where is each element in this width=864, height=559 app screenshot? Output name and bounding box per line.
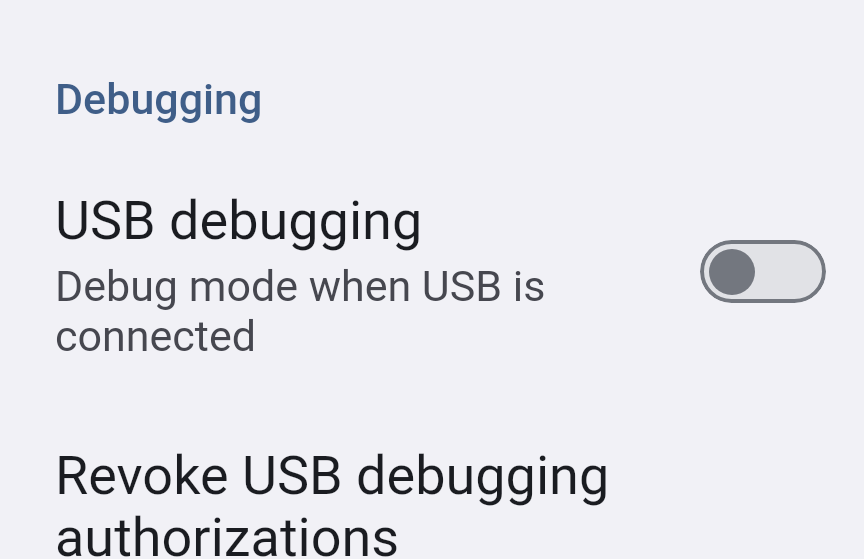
- button[interactable]: Revoke USB debugging authorizations: [0, 410, 864, 559]
- button[interactable]: USB debugging: [0, 189, 864, 379]
- button[interactable]: USB debugging toggle, off: [700, 240, 826, 303]
- staticText: Revoke USB debugging authorizations: [55, 444, 675, 559]
- staticText: Debugging: [55, 74, 263, 124]
- staticText: Debug mode when USB is connected: [55, 261, 635, 361]
- staticText: USB debugging: [55, 189, 423, 252]
